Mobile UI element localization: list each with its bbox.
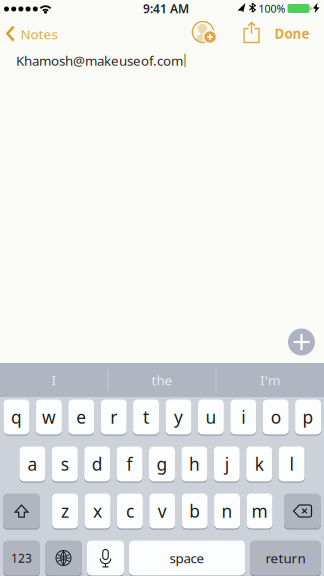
staticText: v [158, 499, 167, 522]
button[interactable]: c [117, 493, 143, 529]
button[interactable] [284, 493, 321, 529]
button[interactable]: k [246, 446, 272, 482]
staticText: 9:41 AM [143, 1, 189, 17]
staticText: k [255, 452, 264, 475]
button[interactable]: return [250, 540, 321, 576]
staticText: d [92, 452, 103, 475]
staticText: space [169, 549, 204, 567]
staticText: 123 [11, 550, 32, 566]
staticText: w [42, 405, 56, 428]
button[interactable]: f [117, 446, 143, 482]
staticText: z [61, 499, 69, 522]
staticText: x [93, 499, 102, 522]
staticText: I [51, 371, 56, 389]
button[interactable]: a [19, 446, 45, 482]
staticText: b [189, 499, 200, 522]
button[interactable]: m [246, 493, 272, 529]
button[interactable]: g [149, 446, 175, 482]
staticText: Khamosh@makeuseof.com [16, 52, 183, 69]
staticText: return [265, 549, 305, 567]
button[interactable]: o [263, 399, 289, 435]
staticText: I'm [260, 371, 280, 389]
button[interactable]: h [181, 446, 207, 482]
staticText: y [174, 405, 183, 428]
button[interactable]: t [133, 399, 159, 435]
button[interactable]: Notes [3, 25, 67, 43]
staticText: a [27, 452, 37, 475]
button[interactable] [190, 20, 218, 46]
staticText: h [189, 452, 200, 475]
button[interactable]: d [84, 446, 110, 482]
button[interactable]: the [112, 365, 212, 395]
button[interactable]: r [101, 399, 127, 435]
staticText: the [151, 371, 172, 389]
staticText: f [127, 452, 133, 475]
button[interactable]: s [52, 446, 78, 482]
button[interactable]: b [182, 493, 208, 529]
staticText: e [76, 405, 86, 428]
button[interactable]: j [214, 446, 240, 482]
staticText: g [156, 452, 167, 475]
staticText: l [290, 452, 294, 475]
button[interactable]: l [279, 446, 305, 482]
staticText: o [271, 405, 281, 428]
staticText: Done [274, 25, 309, 42]
button[interactable] [243, 21, 260, 43]
staticText: i [241, 405, 245, 428]
button[interactable]: v [149, 493, 175, 529]
button[interactable]: w [36, 399, 62, 435]
button[interactable]: p [295, 399, 321, 435]
button[interactable]: x [84, 493, 110, 529]
staticText: u [205, 405, 216, 428]
staticText: r [110, 405, 117, 428]
button[interactable]: I'm [220, 365, 320, 395]
button[interactable]: u [198, 399, 224, 435]
staticText: Notes [20, 25, 57, 43]
button[interactable] [288, 328, 315, 355]
button[interactable]: q [3, 399, 29, 435]
button[interactable]: z [52, 493, 78, 529]
staticText: p [303, 405, 314, 428]
staticText: j [225, 452, 229, 475]
staticText: n [222, 499, 233, 522]
button[interactable]: space [129, 540, 245, 576]
staticText: m [251, 499, 267, 522]
button[interactable]: i [230, 399, 256, 435]
button[interactable]: n [214, 493, 240, 529]
button[interactable] [87, 540, 124, 576]
staticText: s [61, 452, 69, 475]
button[interactable]: e [68, 399, 94, 435]
button[interactable] [45, 540, 82, 576]
staticText: q [11, 405, 22, 428]
button[interactable]: Done [274, 25, 309, 42]
button[interactable]: y [165, 399, 191, 435]
button[interactable] [3, 493, 40, 529]
button[interactable]: 123 [3, 540, 40, 576]
button[interactable]: I [4, 365, 104, 395]
staticText: t [143, 405, 149, 428]
staticText: 100% [258, 1, 285, 16]
staticText: c [126, 499, 134, 522]
